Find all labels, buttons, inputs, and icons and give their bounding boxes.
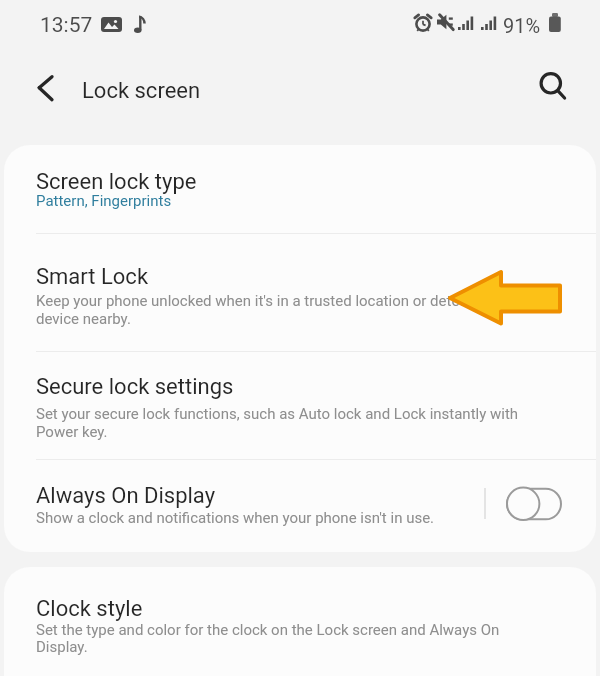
- button[interactable]: [4, 567, 596, 676]
- staticText: Screen lock type: [36, 169, 197, 195]
- button[interactable]: [4, 145, 596, 233]
- staticText: Set the type and color for the clock on …: [36, 621, 500, 639]
- staticText: Set your secure lock functions, such as …: [36, 405, 519, 423]
- button[interactable]: [20, 65, 66, 111]
- staticText: Smart Lock: [36, 264, 149, 290]
- staticText: Pattern, Fingerprints: [36, 192, 172, 210]
- staticText: Always On Display: [36, 483, 216, 509]
- button[interactable]: [4, 351, 596, 459]
- staticText: Clock style: [36, 596, 143, 622]
- staticText: Display.: [36, 638, 88, 656]
- button[interactable]: [4, 459, 596, 552]
- staticText: Lock screen: [82, 78, 201, 104]
- staticText: Power key.: [36, 423, 108, 441]
- button[interactable]: [500, 483, 568, 525]
- staticText: 13:57: [40, 13, 93, 38]
- staticText: Secure lock settings: [36, 374, 234, 400]
- staticText: device nearby.: [36, 310, 131, 328]
- staticText: 91%: [503, 14, 541, 37]
- staticText: Keep your phone unlocked when it's in a …: [36, 292, 489, 310]
- staticText: Show a clock and notifications when your…: [36, 509, 435, 527]
- button[interactable]: [532, 63, 578, 109]
- button[interactable]: [4, 233, 596, 351]
